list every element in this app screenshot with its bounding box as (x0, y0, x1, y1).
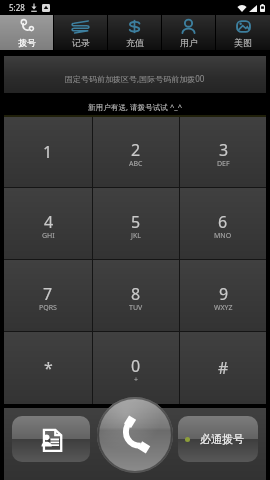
button[interactable]: 7 (4, 260, 92, 331)
button[interactable]: 0 (93, 332, 179, 404)
staticText: + (134, 375, 139, 385)
button[interactable]: 4 (4, 188, 92, 259)
staticText: GHI (42, 231, 55, 241)
staticText: TUV (129, 303, 143, 313)
staticText: 充值 (126, 37, 144, 48)
button[interactable]: Call (97, 397, 173, 473)
staticText: * (44, 357, 53, 379)
staticText: 5:28 (9, 2, 25, 13)
staticText: 0 (131, 355, 141, 377)
button[interactable]: 拨号 (0, 15, 53, 50)
staticText: 9 (219, 283, 229, 305)
button[interactable]: 用户 (162, 15, 215, 50)
staticText: 必通拨号 (200, 432, 244, 446)
staticText: 3 (219, 139, 229, 161)
staticText: JKL (131, 231, 141, 241)
button[interactable]: 充值 (108, 15, 161, 50)
button[interactable]: 2 (93, 117, 179, 187)
button[interactable]: 5 (93, 188, 179, 259)
staticText: MNO (214, 231, 232, 241)
staticText: 6 (218, 211, 228, 233)
staticText: 拨号 (18, 37, 36, 48)
staticText: PQRS (39, 303, 57, 313)
staticText: 2 (131, 139, 141, 161)
button[interactable]: 3 (180, 117, 266, 187)
staticText: 1 (43, 141, 53, 163)
button[interactable]: 1 (4, 117, 92, 187)
button[interactable]: 必通拨号 (178, 416, 258, 462)
staticText: DEF (217, 159, 230, 169)
button[interactable]: 9 (180, 260, 266, 331)
button[interactable]: 8 (93, 260, 179, 331)
staticText: 7 (43, 283, 53, 305)
staticText: 固定号码前加拨区号,国际号码前加拨00 (65, 73, 205, 84)
staticText: WXYZ (214, 303, 233, 313)
button[interactable]: 美图 (216, 15, 270, 50)
button[interactable]: 6 (180, 188, 266, 259)
button[interactable]: Contacts (12, 416, 90, 462)
staticText: 用户 (180, 37, 198, 48)
staticText: 记录 (72, 37, 90, 48)
button[interactable]: # (180, 332, 266, 404)
staticText: 新用户有送, 请拨号试试 ^_^ (88, 102, 182, 112)
staticText: 8 (131, 283, 141, 305)
staticText: 5 (131, 211, 141, 233)
staticText: # (218, 357, 229, 379)
staticText: ABC (129, 159, 143, 169)
button[interactable]: 记录 (54, 15, 107, 50)
staticText: 美图 (234, 37, 252, 48)
staticText: 4 (44, 211, 54, 233)
button[interactable]: * (4, 332, 92, 404)
